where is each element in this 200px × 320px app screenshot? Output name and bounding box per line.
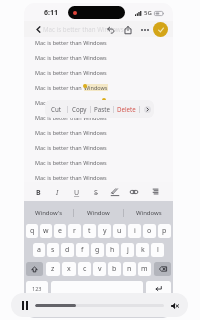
- staticText: h: [110, 245, 115, 255]
- button[interactable]: n: [123, 262, 136, 276]
- button[interactable]: More options: [139, 24, 151, 36]
- staticText: o: [147, 226, 152, 236]
- button[interactable]: U: [71, 182, 83, 201]
- staticText: Mac is better than Windows: [35, 39, 107, 46]
- button[interactable]: x: [62, 262, 76, 276]
- staticText: l: [157, 245, 159, 255]
- button[interactable]: p: [158, 224, 171, 238]
- staticText: Windows: [84, 84, 108, 91]
- staticText: Mac is better than Windows: [35, 54, 107, 61]
- button[interactable]: i: [128, 224, 141, 238]
- button[interactable]: f: [76, 243, 89, 257]
- staticText: Cut: [51, 105, 61, 113]
- staticText: Mac is better than Windows: [35, 129, 107, 136]
- staticText: t: [88, 226, 91, 236]
- staticText: 5G: [144, 9, 152, 17]
- button[interactable]: Backspace: [154, 262, 171, 276]
- button[interactable]: o: [143, 224, 156, 238]
- staticText: Mac is better than Windows: [35, 174, 107, 181]
- staticText: s: [51, 245, 55, 255]
- staticText: v: [98, 264, 102, 274]
- button[interactable]: Cut: [45, 100, 67, 118]
- button[interactable]: Done: [153, 22, 168, 37]
- button[interactable]: l: [151, 243, 164, 257]
- staticText: g: [95, 245, 100, 255]
- button[interactable]: y: [98, 224, 111, 238]
- staticText: m: [141, 264, 148, 274]
- button[interactable]: More: [140, 100, 154, 118]
- button[interactable]: c: [78, 262, 91, 276]
- button[interactable]: u: [113, 224, 126, 238]
- button[interactable]: b: [108, 262, 121, 276]
- staticText: Mac is better than Windows: [35, 159, 107, 166]
- button[interactable]: Pause: [19, 300, 30, 311]
- button[interactable]: Space: [51, 281, 143, 295]
- staticText: e: [58, 226, 62, 236]
- staticText: Mac is better than: [35, 84, 84, 91]
- staticText: Window's: [35, 209, 63, 217]
- button[interactable]: Undo: [105, 24, 117, 36]
- button[interactable]: j: [121, 243, 134, 257]
- button[interactable]: Return: [146, 281, 171, 295]
- staticText: x: [67, 264, 71, 274]
- button[interactable]: Highlight: [109, 182, 121, 201]
- button[interactable]: Share: [122, 24, 134, 36]
- staticText: U: [74, 188, 80, 198]
- staticText: Mac is better than Windows: [35, 99, 107, 106]
- button[interactable]: List: [149, 182, 161, 201]
- button[interactable]: Delete: [114, 100, 139, 118]
- staticText: Paste: [94, 105, 110, 113]
- staticText: Delete: [117, 105, 136, 113]
- button[interactable]: w: [40, 224, 52, 238]
- staticText: Mac is better than Windows: [35, 144, 107, 151]
- staticText: p: [162, 226, 167, 236]
- button[interactable]: d: [61, 243, 74, 257]
- staticText: k: [141, 245, 145, 255]
- staticText: j: [127, 245, 129, 255]
- staticText: Mac is better than Windows: [35, 69, 107, 76]
- button[interactable]: B: [32, 182, 44, 201]
- button[interactable]: k: [136, 243, 149, 257]
- button[interactable]: r: [68, 224, 81, 238]
- staticText: q: [30, 226, 35, 236]
- button[interactable]: s: [47, 243, 59, 257]
- button[interactable]: h: [106, 243, 119, 257]
- staticText: Mac is better than Windows: [43, 25, 124, 33]
- staticText: r: [73, 226, 76, 236]
- staticText: B: [36, 188, 41, 198]
- staticText: n: [127, 264, 132, 274]
- button[interactable]: 123: [26, 281, 48, 295]
- button[interactable]: I: [51, 182, 63, 201]
- button[interactable]: z: [46, 262, 60, 276]
- button[interactable]: S: [90, 182, 102, 201]
- button[interactable]: Windows: [124, 204, 173, 221]
- staticText: S: [94, 188, 98, 198]
- staticText: 123: [32, 285, 42, 292]
- staticText: u: [117, 226, 122, 236]
- staticText: b: [112, 264, 117, 274]
- button[interactable]: q: [26, 224, 38, 238]
- button[interactable]: Paste: [91, 100, 113, 118]
- button[interactable]: a: [33, 243, 45, 257]
- button[interactable]: Shift: [26, 262, 43, 276]
- button[interactable]: Copy: [68, 100, 90, 118]
- button[interactable]: e: [54, 224, 66, 238]
- staticText: 6:11: [44, 8, 58, 18]
- button[interactable]: Back: [33, 24, 44, 35]
- button[interactable]: g: [91, 243, 104, 257]
- button[interactable]: t: [83, 224, 96, 238]
- staticText: Mac is better than Windows: [35, 114, 107, 121]
- staticText: z: [51, 264, 55, 274]
- button[interactable]: Window: [74, 204, 123, 221]
- button[interactable]: Window's: [24, 204, 73, 221]
- button[interactable]: Link: [128, 182, 140, 201]
- staticText: Windows: [136, 209, 162, 217]
- staticText: i: [134, 226, 136, 236]
- button[interactable]: m: [138, 262, 151, 276]
- button[interactable]: Mute: [169, 300, 180, 311]
- staticText: w: [43, 226, 49, 236]
- staticText: a: [37, 245, 41, 255]
- staticText: Copy: [72, 105, 87, 113]
- button[interactable]: v: [93, 262, 106, 276]
- staticText: Window: [87, 209, 110, 217]
